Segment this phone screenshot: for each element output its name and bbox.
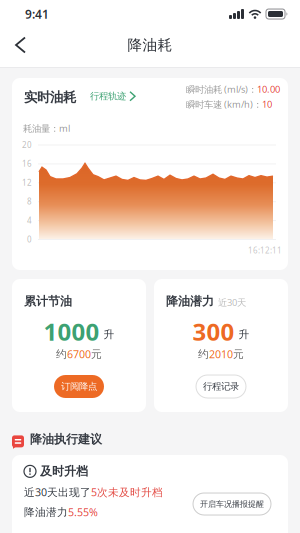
staticText: 5.55% (68, 505, 98, 519)
staticText: 升 (238, 328, 249, 341)
button[interactable]: 行程记录 (196, 375, 246, 398)
staticText: 行程记录 (203, 381, 239, 392)
staticText: 6700 (67, 347, 91, 361)
staticText: 升 (103, 328, 114, 341)
staticText: 开启车况播报提醒 (200, 499, 264, 509)
staticText: 元 (233, 347, 244, 361)
staticText: 降油潜力 (166, 294, 214, 309)
staticText: 8 (27, 196, 32, 207)
staticText: 约 (198, 347, 209, 361)
staticText: 2010 (209, 347, 233, 361)
staticText: 10.00 (257, 83, 280, 95)
staticText: 5次未及时升档 (91, 485, 163, 499)
staticText: 行程轨迹 (90, 90, 126, 102)
staticText: 16:12:11 (248, 245, 282, 256)
staticText: 4 (27, 215, 32, 226)
staticText: 瞬时车速 (km/h)： (186, 98, 262, 110)
staticText: 累计节油 (24, 294, 72, 309)
staticText: 实时油耗 (24, 89, 76, 105)
staticText: 约 (56, 347, 67, 361)
button[interactable]: Back (0, 28, 25, 61)
staticText: 0 (27, 234, 32, 245)
button[interactable]: 开启车况播报提醒 (193, 493, 271, 515)
staticText: 9:41 (25, 6, 49, 22)
button[interactable]: 行程轨迹 (90, 90, 135, 102)
staticText: 300 (192, 315, 234, 347)
staticText: 近30天 (218, 296, 246, 309)
staticText: 元 (91, 347, 102, 361)
staticText: 降油潜力 (24, 505, 68, 519)
staticText: 降油耗 (127, 36, 172, 54)
staticText: 1000 (43, 315, 99, 347)
staticText: 降油执行建议 (30, 432, 102, 447)
staticText: 16 (22, 158, 32, 169)
staticText: 10 (262, 98, 272, 110)
staticText: 及时升档 (40, 464, 88, 479)
staticText: 耗油量：ml (23, 122, 70, 134)
staticText: 瞬时油耗 (ml/s)： (186, 83, 257, 95)
staticText: 近30天出现了 (24, 485, 91, 499)
button[interactable]: 订阅降点 (54, 375, 104, 398)
staticText: 订阅降点 (61, 381, 97, 392)
staticText: 12 (22, 177, 32, 188)
staticText: 20 (22, 139, 32, 150)
